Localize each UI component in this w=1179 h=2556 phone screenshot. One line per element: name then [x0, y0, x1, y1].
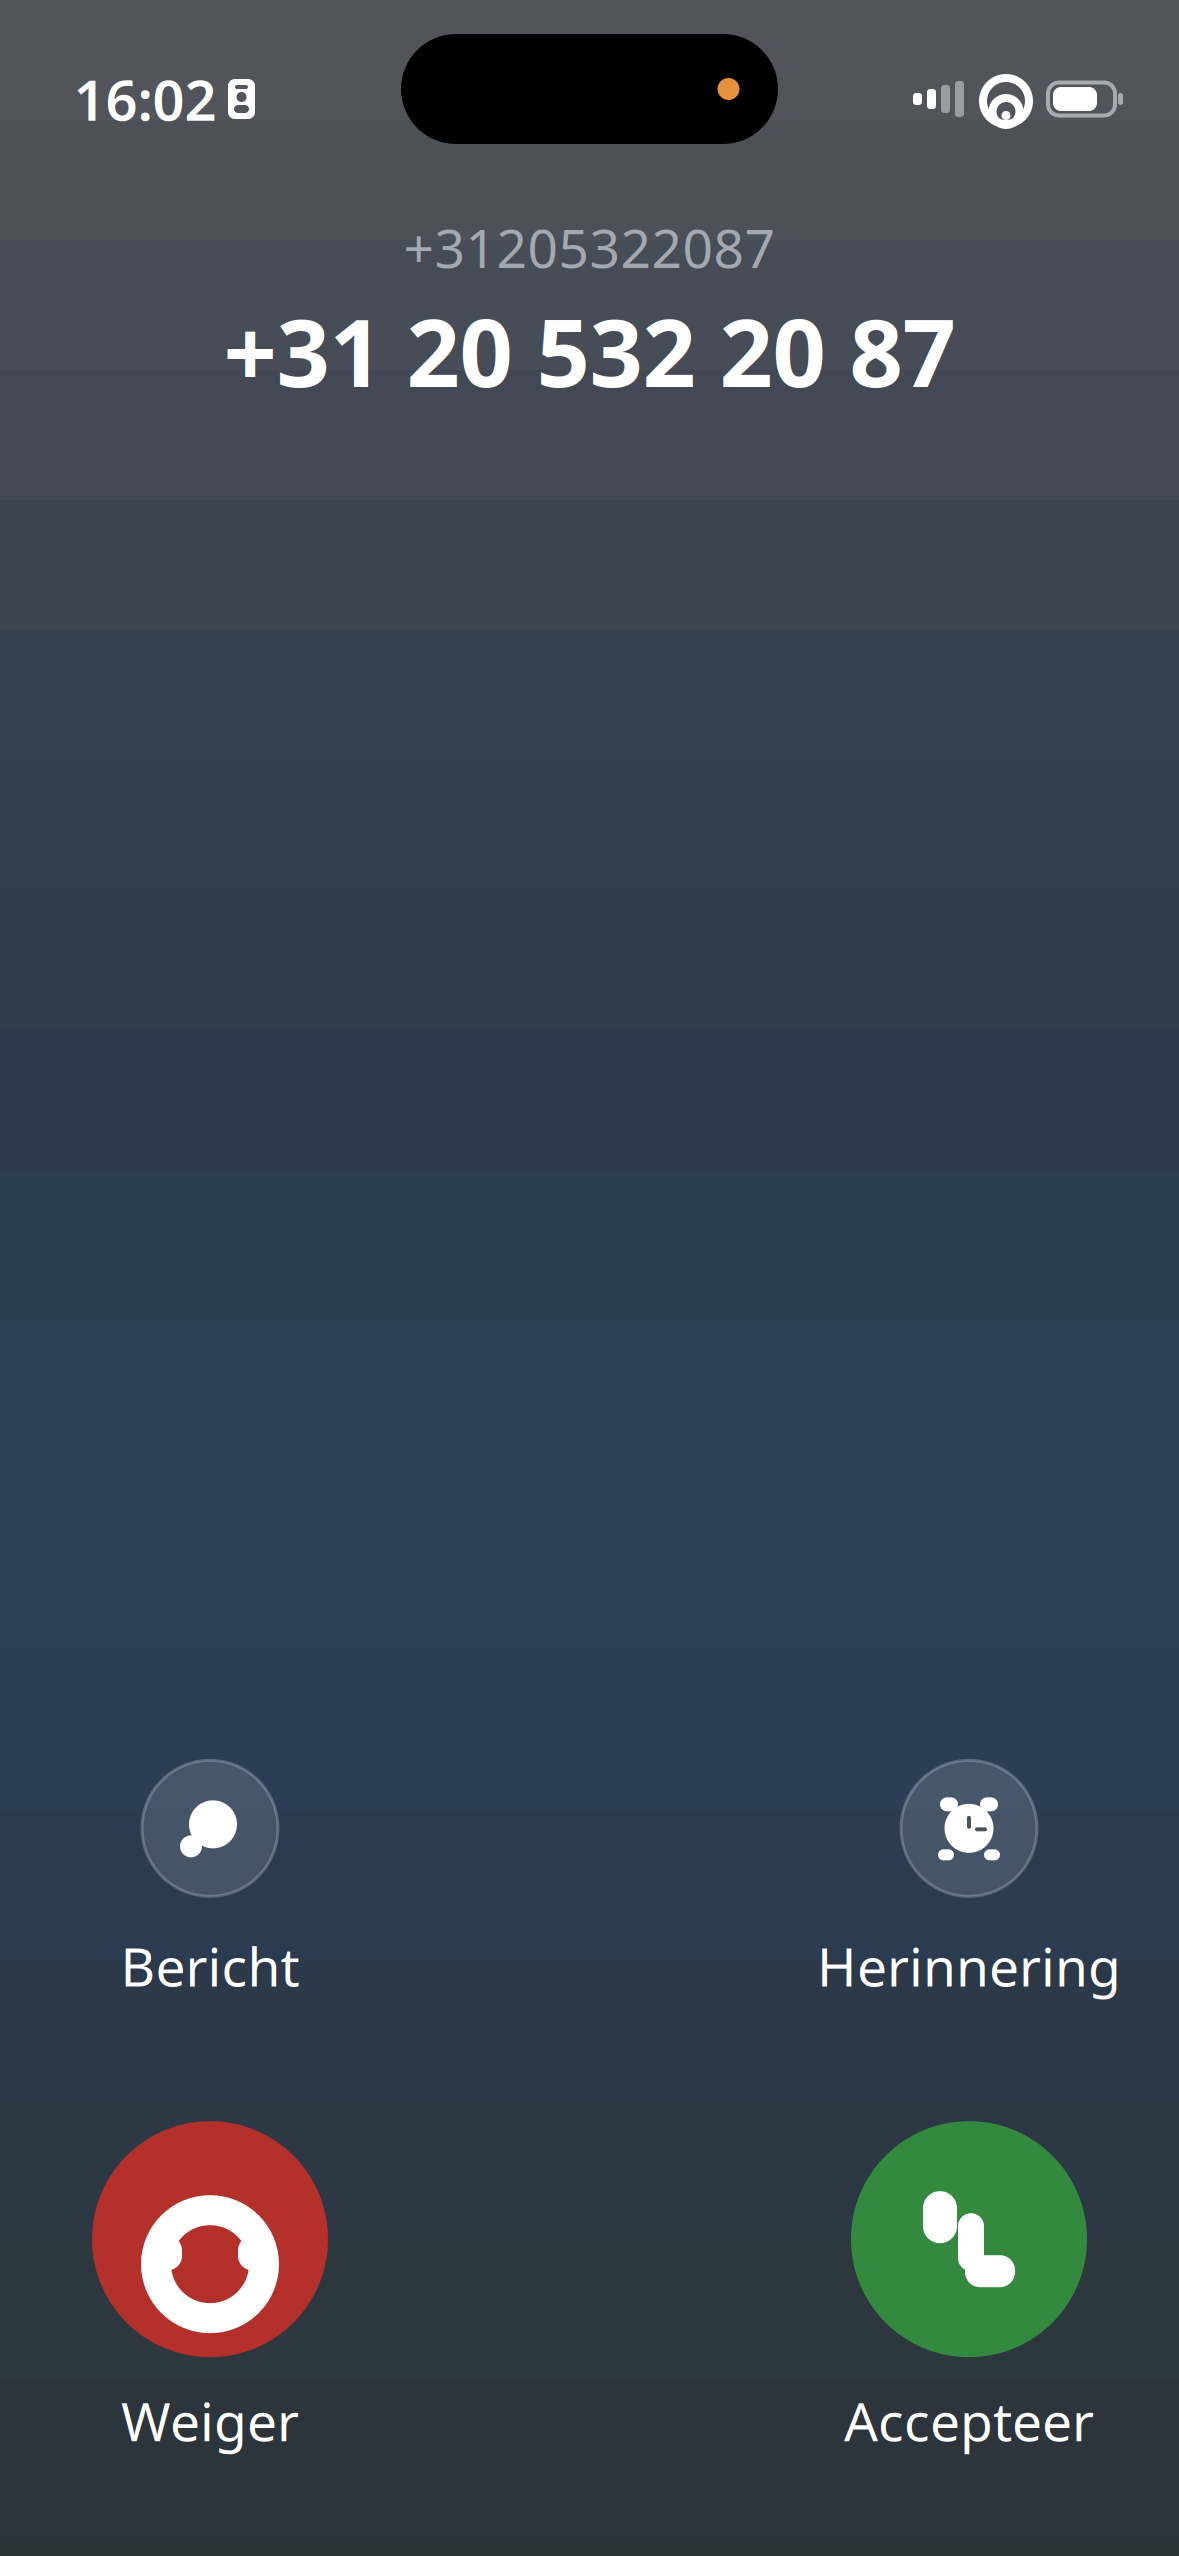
button[interactable]: Accepteer [769, 2121, 1169, 2456]
staticText: 16:02 [73, 62, 216, 136]
staticText: Herinnering [817, 1930, 1121, 2001]
button[interactable]: Bericht [10, 1760, 410, 2001]
button[interactable]: Weiger [10, 2121, 410, 2456]
staticText: Weiger [121, 2385, 299, 2456]
staticText: +31 20 532 20 87 [223, 289, 955, 413]
staticText: Bericht [120, 1930, 299, 2001]
staticText: Accepteer [844, 2385, 1094, 2456]
staticText: +31205322087 [403, 212, 775, 283]
button[interactable]: Herinnering [769, 1760, 1169, 2001]
